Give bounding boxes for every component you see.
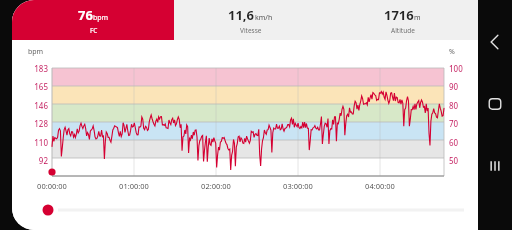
staticText: 183: [14, 63, 48, 74]
staticText: 70: [449, 118, 459, 129]
staticText: 01:00:00: [104, 181, 164, 191]
button[interactable]: Home: [483, 92, 507, 116]
staticText: bpm: [93, 13, 109, 23]
staticText: 100: [449, 63, 463, 74]
staticText: %: [449, 47, 455, 57]
button[interactable]: 76: [12, 0, 174, 40]
staticText: 165: [14, 81, 48, 92]
staticText: 128: [14, 118, 48, 129]
button[interactable]: Recents: [483, 154, 507, 178]
button[interactable]: 1716: [326, 0, 478, 40]
staticText: 04:00:00: [350, 181, 410, 191]
staticText: 02:00:00: [186, 181, 246, 191]
staticText: FC: [90, 26, 98, 35]
staticText: Altitude: [391, 26, 415, 35]
staticText: 92: [14, 155, 48, 166]
button[interactable]: 11,6: [174, 0, 326, 40]
staticText: 90: [449, 81, 459, 92]
staticText: 80: [449, 100, 459, 111]
staticText: 00:00:00: [22, 181, 82, 191]
staticText: bpm: [28, 47, 44, 57]
staticText: 03:00:00: [268, 181, 328, 191]
staticText: 11,6: [228, 6, 255, 24]
staticText: 110: [14, 137, 48, 148]
staticText: 146: [14, 100, 48, 111]
button[interactable]: Back: [483, 30, 507, 54]
staticText: 60: [449, 137, 459, 148]
staticText: km/h: [255, 13, 273, 23]
staticText: 50: [449, 155, 459, 166]
staticText: m: [414, 13, 421, 23]
staticText: Vitesse: [240, 26, 262, 35]
staticText: 1716: [384, 6, 414, 24]
staticText: 76: [78, 6, 93, 24]
